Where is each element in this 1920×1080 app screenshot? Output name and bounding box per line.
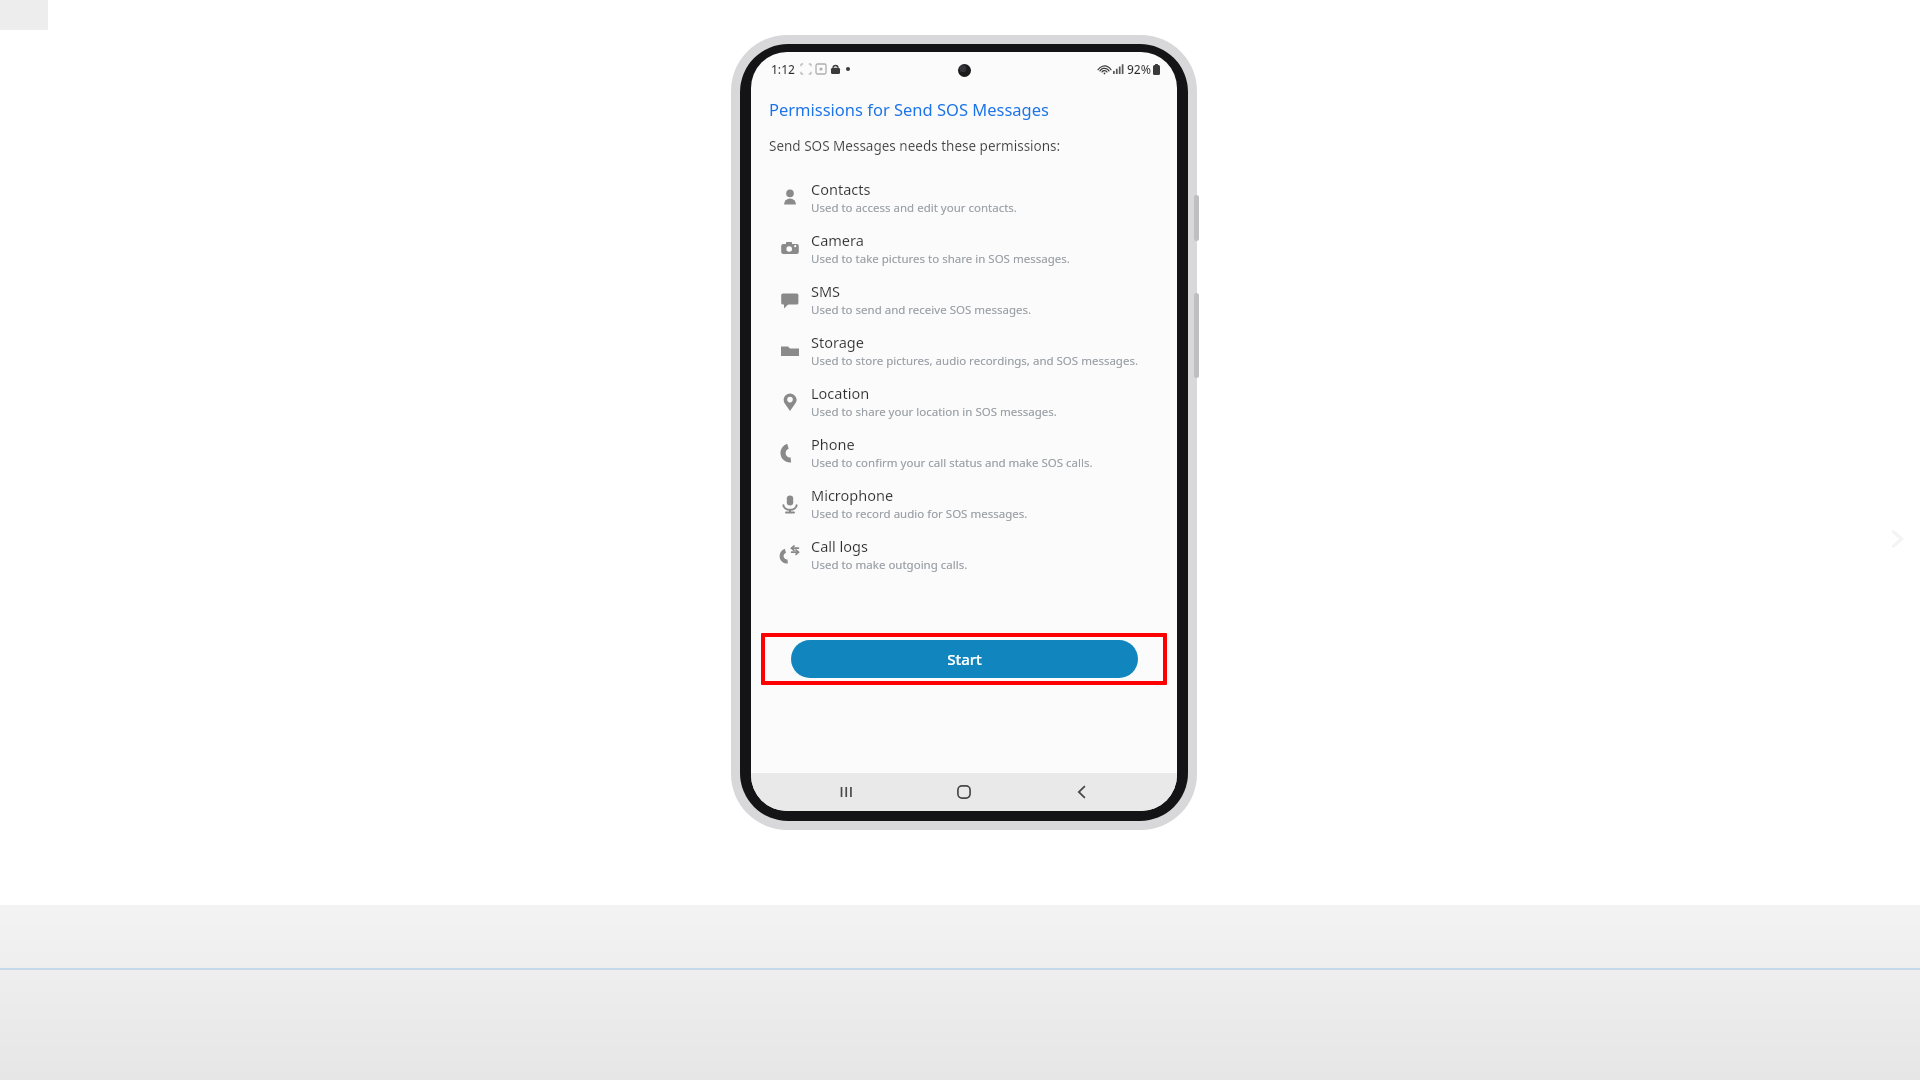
- staticText: Used to record audio for SOS messages.: [811, 506, 1028, 522]
- button[interactable]: Recent apps: [823, 773, 869, 811]
- button[interactable]: Microphone: [751, 478, 1177, 529]
- staticText: Call logs: [811, 536, 868, 556]
- button[interactable]: Call logs: [751, 529, 1177, 580]
- button[interactable]: Phone: [751, 427, 1177, 478]
- staticText: 1:12: [771, 61, 795, 77]
- staticText: Storage: [811, 332, 864, 352]
- button[interactable]: Start: [791, 640, 1138, 678]
- button[interactable]: Back: [1059, 773, 1105, 811]
- staticText: Used to access and edit your contacts.: [811, 200, 1017, 216]
- staticText: Used to confirm your call status and mak…: [811, 455, 1093, 471]
- staticText: Start: [947, 649, 982, 669]
- staticText: Used to store pictures, audio recordings…: [811, 353, 1138, 369]
- staticText: Used to make outgoing calls.: [811, 557, 968, 573]
- button[interactable]: Location: [751, 376, 1177, 427]
- staticText: Used to send and receive SOS messages.: [811, 302, 1032, 318]
- staticText: Phone: [811, 434, 855, 454]
- button[interactable]: Home: [941, 773, 987, 811]
- staticText: 92%: [1127, 61, 1151, 77]
- button[interactable]: Storage: [751, 325, 1177, 376]
- staticText: Used to take pictures to share in SOS me…: [811, 251, 1070, 267]
- staticText: Location: [811, 383, 870, 403]
- staticText: Contacts: [811, 179, 871, 199]
- button[interactable]: Contacts: [751, 172, 1177, 223]
- button[interactable]: SMS: [751, 274, 1177, 325]
- staticText: Microphone: [811, 485, 894, 505]
- staticText: Used to share your location in SOS messa…: [811, 404, 1057, 420]
- staticText: Camera: [811, 230, 864, 250]
- staticText: SMS: [811, 281, 841, 301]
- staticText: Send SOS Messages needs these permission…: [769, 137, 1061, 155]
- staticText: Permissions for Send SOS Messages: [769, 98, 1049, 120]
- button[interactable]: Camera: [751, 223, 1177, 274]
